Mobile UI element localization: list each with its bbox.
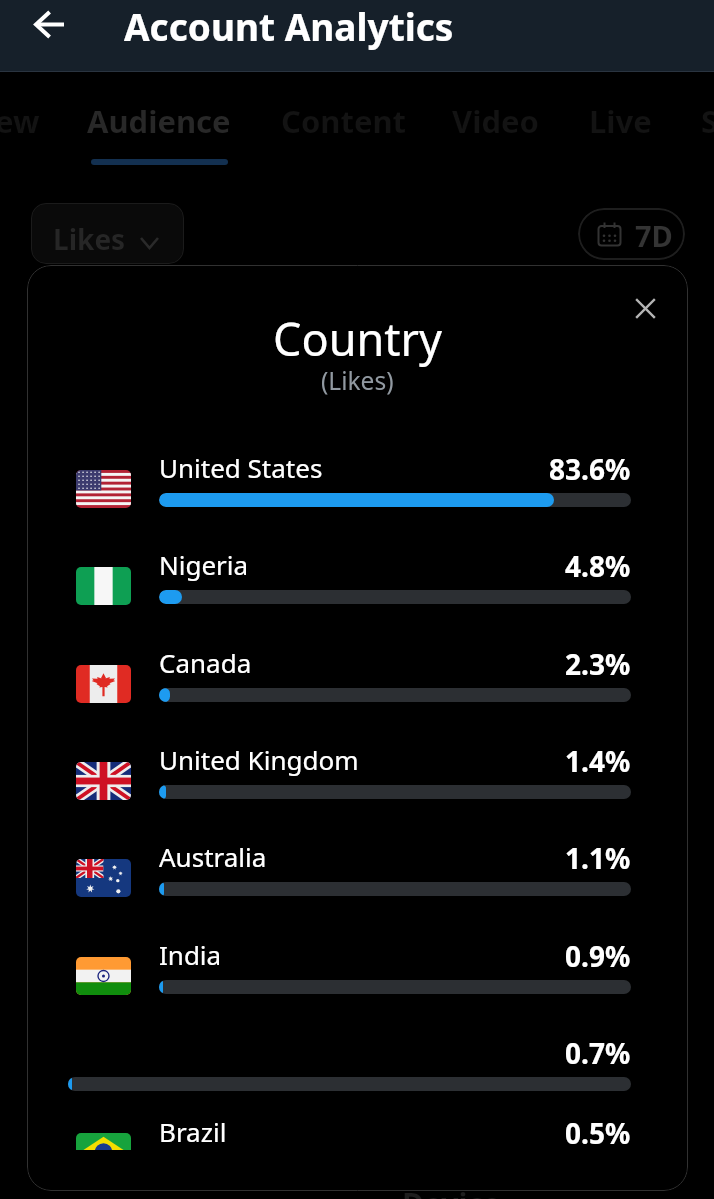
button[interactable]: 7D: [578, 208, 685, 260]
staticText: Nigeria: [159, 547, 249, 582]
staticText: 2.3%: [565, 645, 631, 683]
staticText: 1.1%: [565, 839, 631, 877]
button[interactable]: ew: [0, 72, 77, 162]
staticText: 4.8%: [565, 547, 631, 585]
staticText: 1.4%: [565, 742, 631, 780]
staticText: 83.6%: [549, 450, 631, 488]
button[interactable]: Content: [271, 72, 416, 162]
staticText: Content: [281, 100, 406, 142]
staticText: Likes: [53, 220, 126, 258]
staticText: Live: [589, 100, 652, 142]
button[interactable]: S: [690, 72, 714, 162]
button[interactable]: Likes: [31, 203, 184, 264]
staticText: Brazil: [159, 1114, 227, 1149]
staticText: (Likes): [321, 364, 394, 397]
staticText: Canada: [159, 645, 252, 680]
staticText: 7D: [635, 216, 673, 255]
staticText: 0.5%: [565, 1114, 631, 1152]
button[interactable]: Live: [575, 72, 665, 162]
button[interactable]: Back: [22, 1, 76, 55]
staticText: Device: [402, 1183, 501, 1199]
staticText: India: [159, 937, 222, 972]
staticText: 0.9%: [565, 937, 631, 975]
button[interactable]: Video: [435, 72, 555, 162]
staticText: Australia: [159, 839, 267, 874]
staticText: United States: [159, 450, 323, 485]
button[interactable]: Audience: [79, 72, 239, 162]
staticText: United Kingdom: [159, 742, 359, 777]
staticText: S: [701, 100, 714, 142]
staticText: Video: [452, 100, 539, 142]
button[interactable]: Close: [621, 284, 669, 332]
staticText: Account Analytics: [124, 1, 454, 51]
staticText: Country: [273, 308, 443, 369]
staticText: ew: [0, 100, 40, 142]
staticText: Audience: [87, 100, 231, 142]
staticText: 0.7%: [565, 1034, 631, 1072]
